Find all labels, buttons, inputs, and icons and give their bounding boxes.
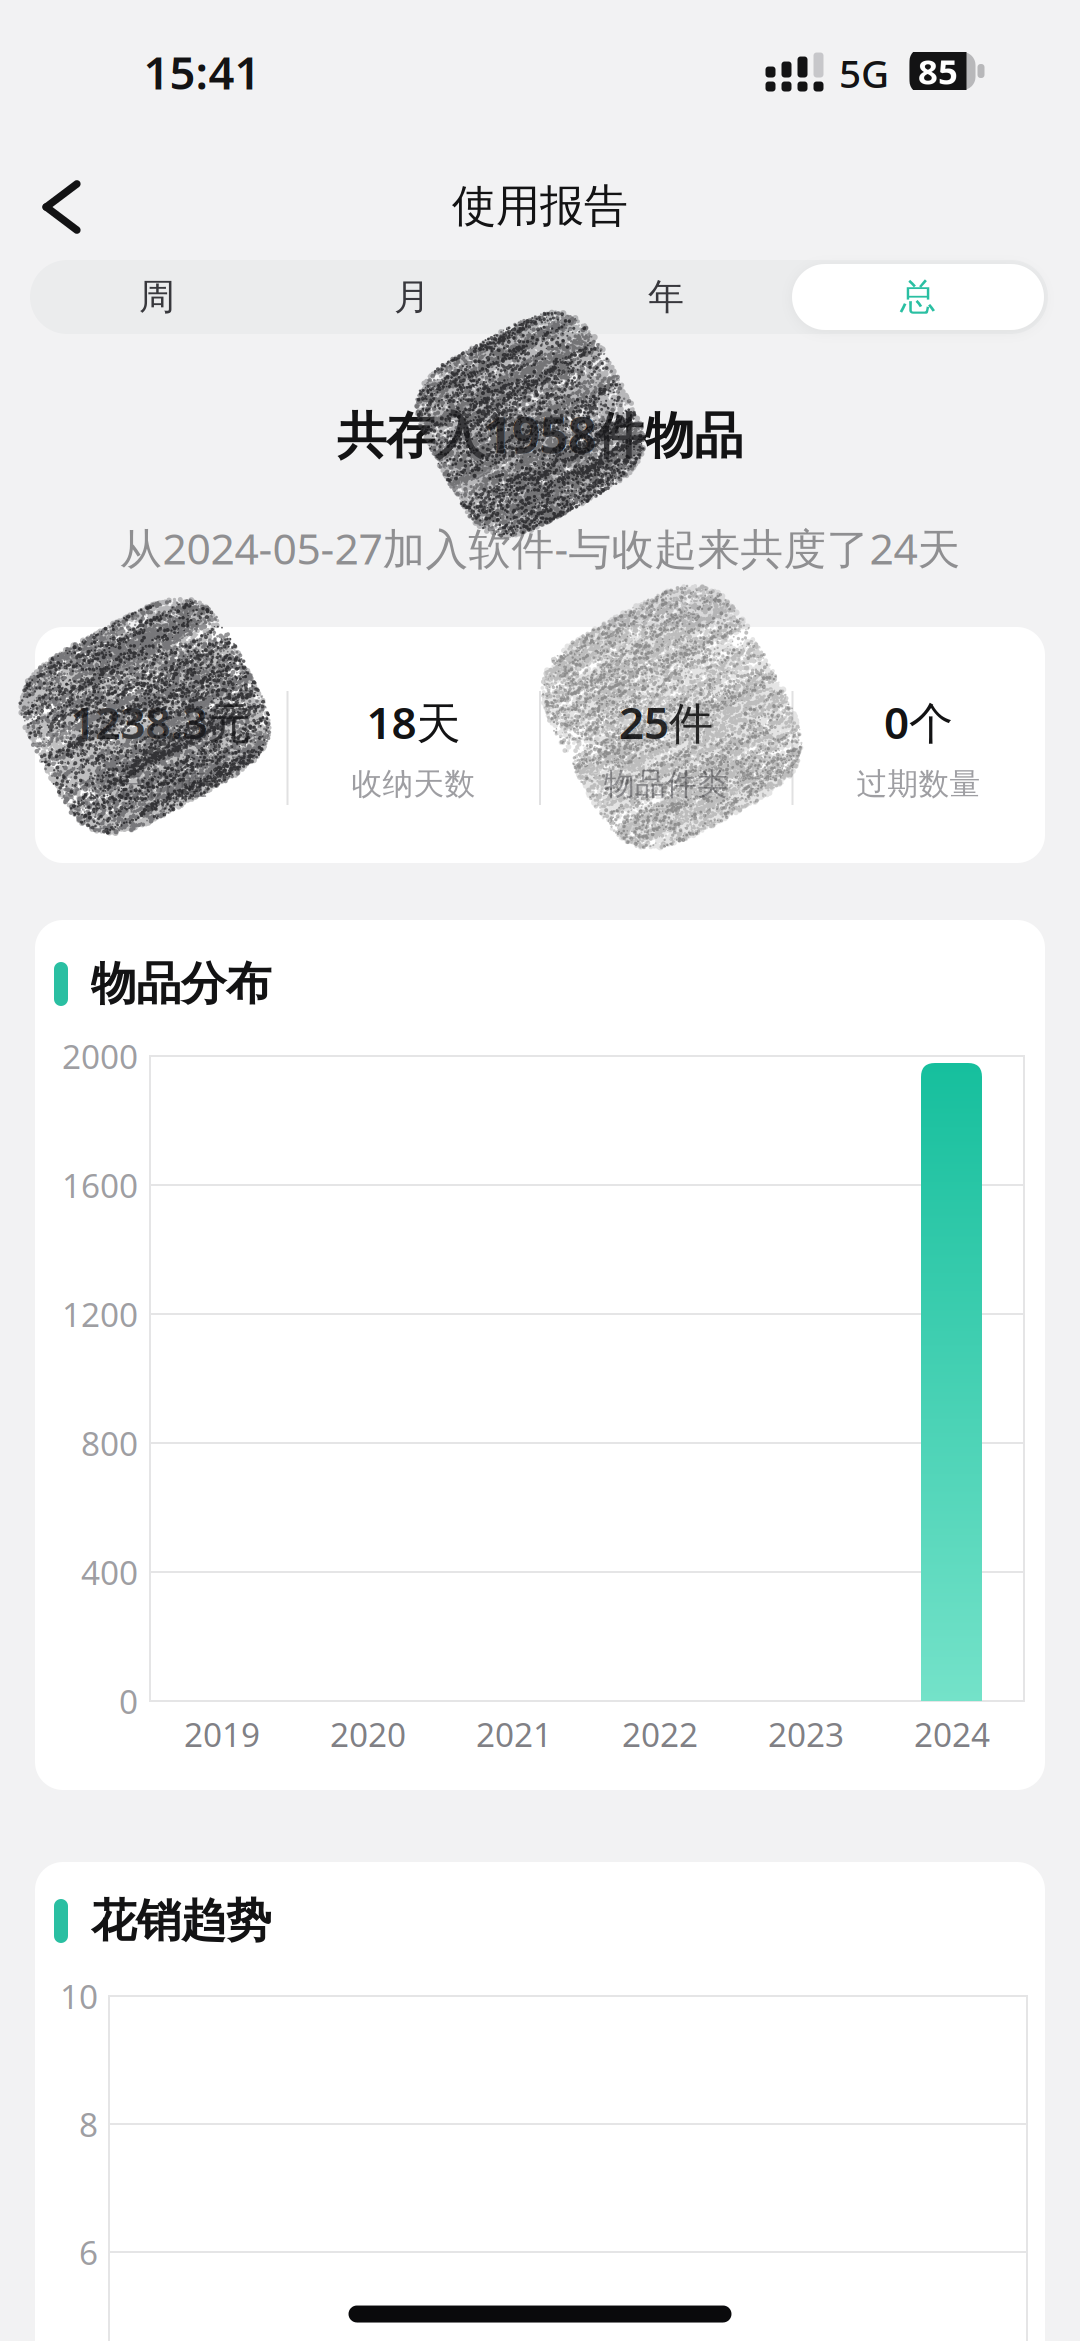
staticText: 年 [648,275,684,319]
staticText: 总价值 [114,765,207,803]
staticText: 共存入1958件物品 [337,401,743,467]
staticText: 800 [81,1421,138,1465]
staticText: 0 [119,1679,138,1723]
staticText: 周 [139,275,175,319]
staticText: 15:41 [143,42,260,102]
staticText: 2000 [62,1034,138,1078]
staticText: 物品分布 [91,956,271,1012]
staticText: 2020 [330,1712,406,1756]
staticText: 2024 [914,1712,990,1756]
staticText: 从2024-05-27加入软件-与收起来共度了24天 [119,520,960,576]
button[interactable]: 总 [792,264,1044,330]
staticText: 0个 [884,693,953,751]
staticText: 18天 [366,693,460,751]
staticText: 总 [900,275,936,319]
staticText: 400 [81,1550,138,1594]
staticText: 25件 [619,693,713,751]
staticText: 花销趋势 [91,1893,271,1949]
staticText: 6 [79,2230,98,2274]
staticText: 1600 [62,1163,138,1207]
staticText: 2021 [476,1712,552,1756]
staticText: 1238.3元 [70,693,251,751]
staticText: 过期数量 [856,765,980,803]
staticText: 收纳天数 [351,765,475,803]
button[interactable]: 月 [285,260,539,334]
button[interactable]: Back [29,169,89,244]
button[interactable]: 年 [539,260,793,334]
staticText: 2022 [622,1712,698,1756]
staticText: 8 [79,2102,98,2146]
staticText: 1200 [62,1292,138,1336]
staticText: 物品件类 [604,765,728,803]
staticText: 使用报告 [452,179,628,233]
staticText: 2023 [768,1712,844,1756]
staticText: 10 [60,1974,98,2018]
staticText: 月 [394,275,430,319]
button[interactable]: 周 [30,260,284,334]
staticText: 5G [839,47,889,99]
staticText: 85 [918,48,958,94]
staticText: 2019 [184,1712,260,1756]
